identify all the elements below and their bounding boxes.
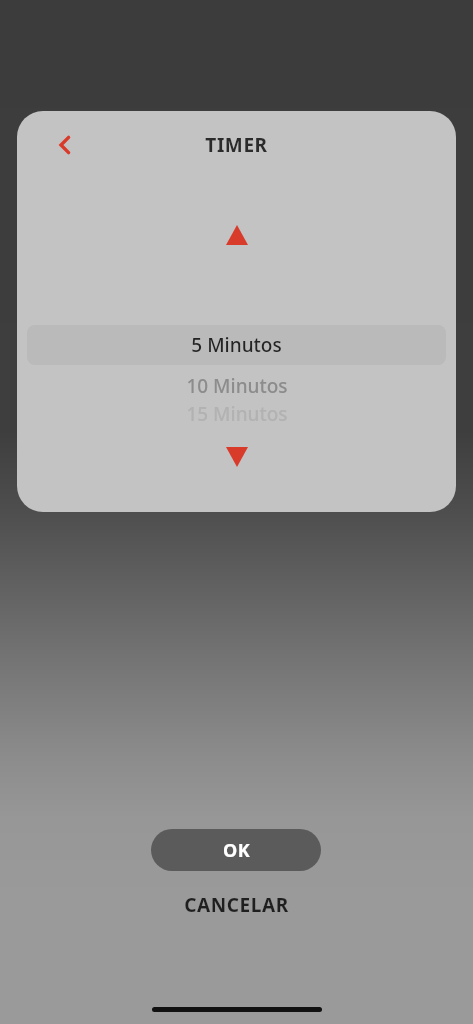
staticText: 5 Minutos [191,332,282,358]
staticText: 10 Minutos [186,373,288,399]
button[interactable]: OK [151,829,321,871]
button[interactable]: 5 Minutos [27,325,446,365]
button[interactable]: Back [37,117,93,173]
button[interactable]: Scroll up [209,215,265,255]
button[interactable]: Scroll down [209,437,265,477]
button[interactable]: CANCELAR [0,884,473,926]
button[interactable]: 15 Minutos [27,399,446,429]
staticText: TIMER [205,132,268,158]
staticText: 15 Minutos [186,401,288,427]
staticText: CANCELAR [184,892,289,918]
staticText: OK [223,838,250,863]
button[interactable]: 10 Minutos [27,369,446,403]
